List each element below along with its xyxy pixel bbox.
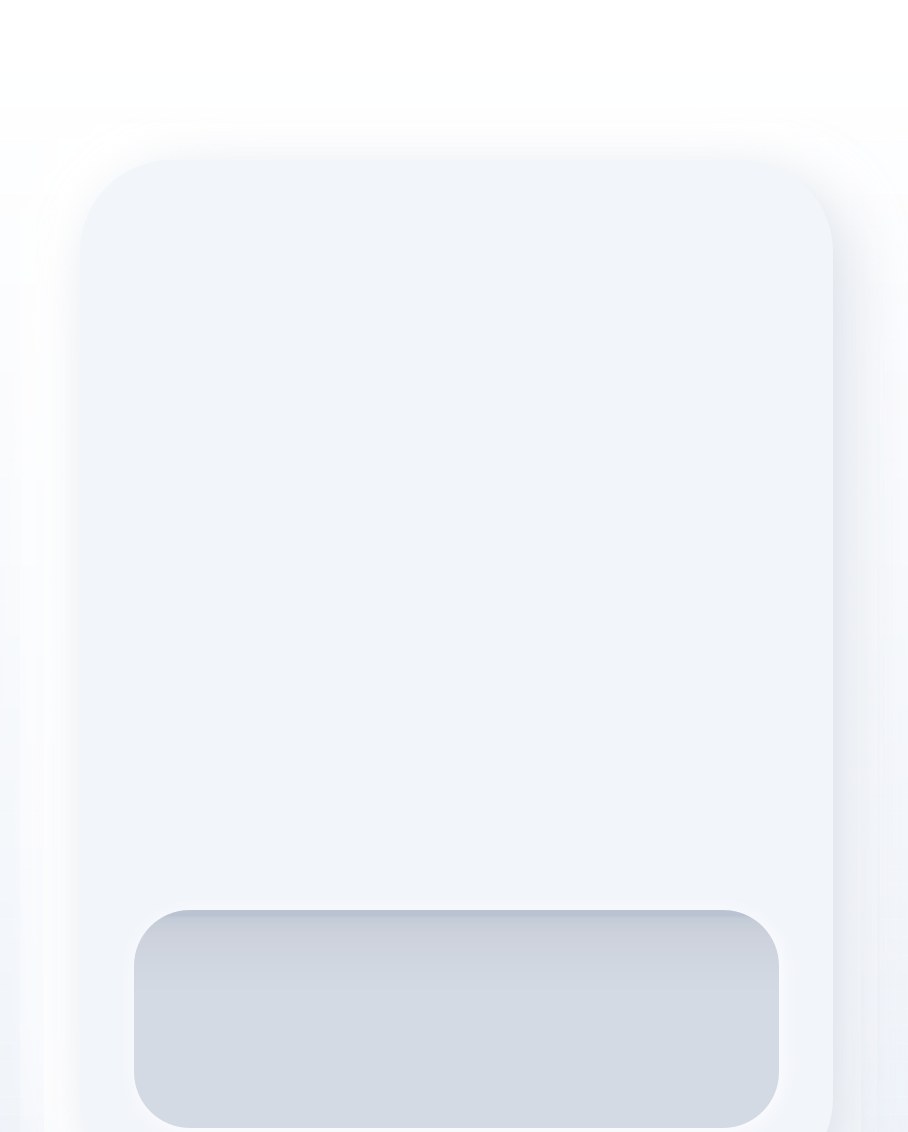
button[interactable]: Primary action (134, 910, 779, 1128)
